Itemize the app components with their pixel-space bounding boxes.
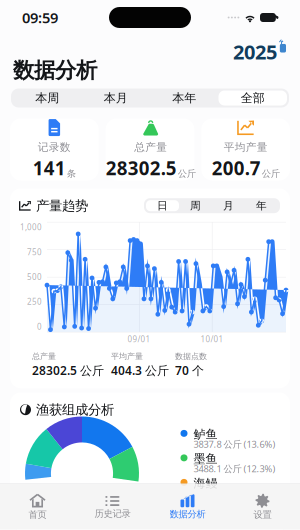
staticText: 28302.5 [106, 156, 177, 180]
staticText: 3837.8 公斤 (13.6%) [193, 438, 275, 450]
staticText: 本周 [35, 91, 59, 105]
button[interactable]: 数据分析 [150, 484, 225, 529]
staticText: 平均产量 [111, 351, 143, 361]
staticText: 141 [33, 156, 66, 180]
staticText: 日 [157, 199, 168, 212]
staticText: 750 [27, 247, 42, 257]
staticText: 500 [27, 272, 42, 282]
staticText: 年 [256, 199, 267, 212]
staticText: 总产量 [32, 351, 56, 361]
staticText: 09/01 [127, 334, 150, 344]
button[interactable]: 本月 [81, 90, 150, 105]
staticText: 墨鱼 [193, 451, 217, 466]
staticText: 数据点数 [175, 351, 207, 361]
button[interactable]: 本年 [150, 90, 218, 105]
staticText: 200.7 [212, 156, 261, 180]
button[interactable]: 本周 [13, 90, 81, 105]
staticText: 条 [67, 168, 76, 179]
staticText: 数据分析 [169, 508, 205, 520]
staticText: 本年 [172, 91, 196, 105]
staticText: 产量趋势 [36, 197, 88, 214]
button[interactable]: 日 [146, 200, 179, 211]
staticText: 250 [27, 296, 42, 307]
staticText: 记录数 [38, 141, 71, 154]
staticText: 历史记录 [94, 508, 130, 519]
staticText: 70 个 [175, 362, 204, 378]
button[interactable]: 历史记录 [75, 484, 150, 529]
staticText: 3488.1 公斤 (12.3%) [193, 462, 275, 475]
staticText: 公斤 [262, 168, 280, 179]
staticText: 本月 [104, 91, 128, 105]
staticText: 设置 [253, 509, 271, 520]
staticText: 月 [223, 199, 234, 212]
staticText: 周 [190, 199, 201, 212]
staticText: 数据分析 [13, 57, 97, 83]
staticText: 28302.5 公斤 [32, 362, 104, 378]
button[interactable]: 首页 [0, 484, 75, 529]
staticText: 首页 [28, 509, 46, 520]
staticText: 404.3 公斤 [111, 362, 169, 378]
staticText: 海鳗 [193, 476, 217, 491]
staticText: 09:59 [22, 8, 58, 27]
staticText: 鲈鱼 [193, 427, 217, 442]
staticText: 1,000 [20, 222, 42, 232]
staticText: 0 [37, 321, 42, 332]
button[interactable]: 选择年份 2025 [233, 35, 300, 88]
staticText: 公斤 [178, 168, 196, 179]
staticText: 平均产量 [224, 141, 268, 154]
button[interactable]: 年 [245, 200, 278, 211]
button[interactable]: 设置 [225, 484, 300, 529]
staticText: 全部 [241, 91, 265, 105]
button[interactable]: 全部 [218, 90, 287, 105]
button[interactable]: 月 [212, 200, 245, 211]
staticText: 2025 [233, 38, 277, 65]
button[interactable]: 周 [179, 200, 212, 211]
staticText: 总产量 [134, 141, 167, 154]
staticText: 10/01 [200, 334, 223, 344]
staticText: 渔获组成分析 [36, 401, 114, 418]
